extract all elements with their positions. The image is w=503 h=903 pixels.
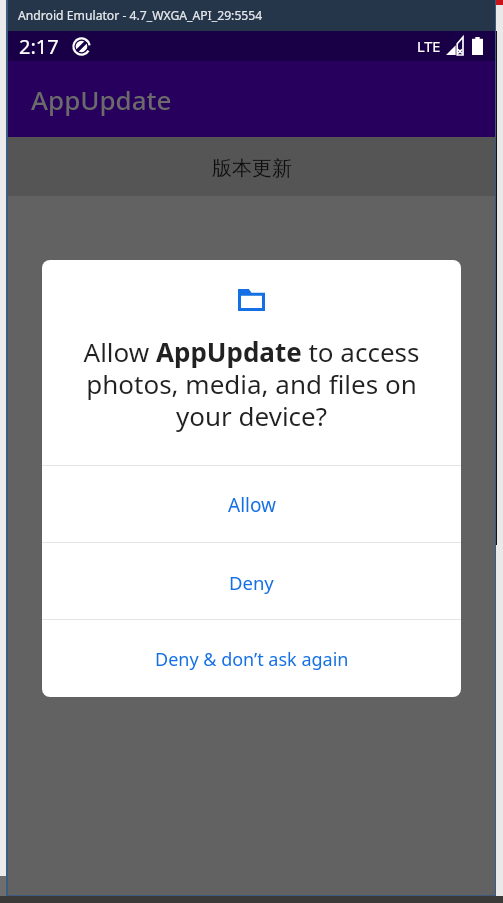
other: Screen rotation locked [72,37,91,56]
button[interactable]: Deny [42,543,461,619]
button[interactable]: Allow [42,466,461,542]
staticText: Allow [228,492,276,518]
staticText: 版本更新 [212,156,292,181]
staticText: Allow AppUpdate to access photos, media,… [64,334,439,434]
other: Signal [446,37,463,55]
staticText: Deny [229,570,274,595]
staticText: Deny & don’t ask again [155,647,349,672]
staticText: LTE [417,36,441,56]
staticText: Android Emulator - 4.7_WXGA_API_29:5554 [18,7,263,24]
staticText: 2:17 [19,33,59,60]
other: Battery [472,37,483,55]
staticText: AppUpdate [31,82,172,117]
button[interactable]: Deny & don’t ask again [42,620,461,696]
